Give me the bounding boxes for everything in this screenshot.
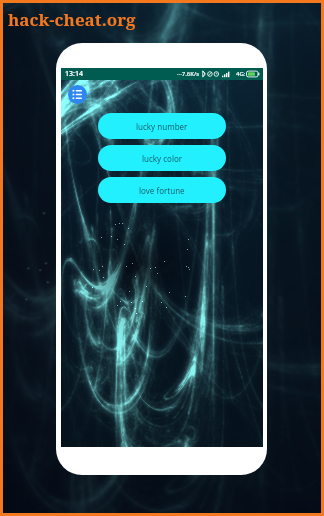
button[interactable]: lucky color <box>98 145 226 171</box>
button[interactable]: lucky number <box>98 113 226 139</box>
button[interactable]: Menu <box>68 85 87 104</box>
staticText: love fortune <box>139 185 185 196</box>
staticText: 4G: <box>236 70 246 78</box>
staticText: 13:14 <box>65 69 83 79</box>
staticText: hack-cheat.org <box>8 8 136 31</box>
staticText: lucky number <box>136 121 188 132</box>
staticText: ···7.6K/s <box>177 70 200 78</box>
staticText: lucky color <box>142 153 183 164</box>
button[interactable]: love fortune <box>98 177 226 203</box>
